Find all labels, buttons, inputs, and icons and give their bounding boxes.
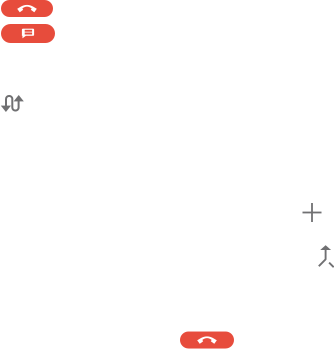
button[interactable]: Swap calls [0,93,26,114]
button[interactable]: End call [180,331,234,348]
button[interactable]: Add call [299,199,325,225]
button[interactable]: Send message [1,24,55,43]
button[interactable]: End call [1,0,53,17]
button[interactable]: Merge calls [317,243,334,269]
